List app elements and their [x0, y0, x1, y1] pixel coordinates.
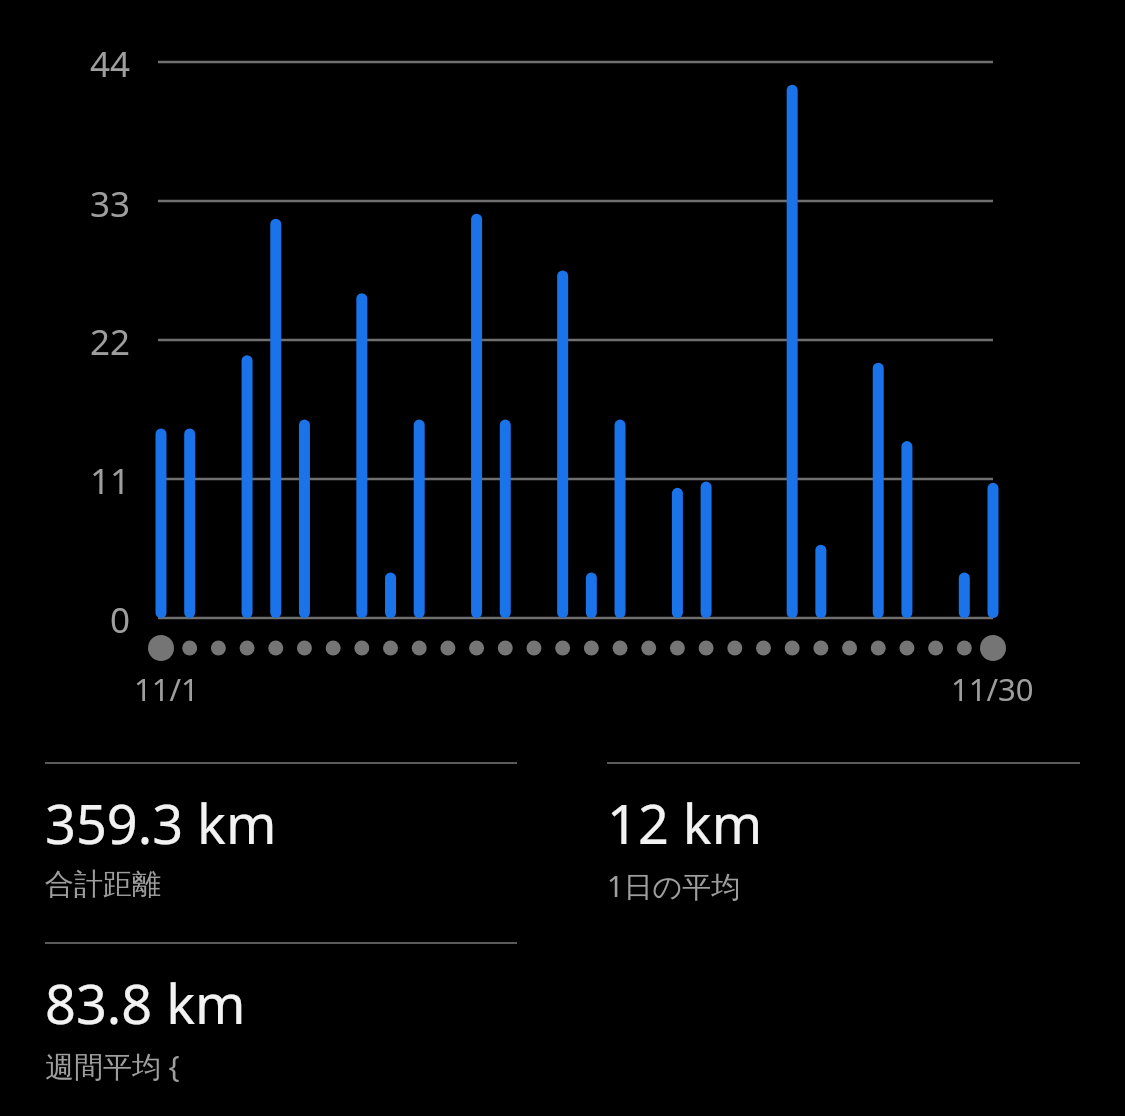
staticText: 12 km	[607, 786, 763, 860]
staticText: 33	[0, 180, 130, 228]
staticText: 359.3 km	[45, 786, 277, 860]
button[interactable]: November daily distance chart	[0, 0, 1125, 712]
staticText: 22	[0, 318, 130, 366]
staticText: 44	[0, 40, 130, 88]
button[interactable]: 12 km	[607, 762, 1080, 906]
staticText: 83.8 km	[45, 966, 246, 1040]
staticText: 1日の平均	[607, 866, 741, 906]
staticText: 週間平均 {	[45, 1046, 180, 1086]
staticText: 11/30	[951, 668, 1034, 710]
staticText: 合計距離	[45, 866, 161, 903]
staticText: 11	[0, 457, 130, 505]
button[interactable]: 83.8 km	[45, 942, 517, 1086]
staticText: 0	[0, 596, 130, 644]
staticText: 11/1	[134, 668, 199, 710]
button[interactable]: 359.3 km	[45, 762, 517, 903]
